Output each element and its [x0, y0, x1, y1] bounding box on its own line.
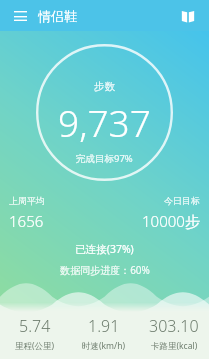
button[interactable]: Open navigation menu — [9, 5, 31, 27]
staticText: 数据同步进度：60% — [60, 263, 150, 277]
staticText: 上周平均 — [9, 195, 45, 206]
button[interactable]: Map — [176, 4, 200, 28]
staticText: 情侣鞋 — [38, 8, 77, 24]
staticText: 完成目标97% — [76, 152, 133, 165]
staticText: 9,737 — [58, 97, 151, 147]
staticText: 时速(km/h) — [82, 340, 126, 352]
staticText: 步数 — [94, 80, 115, 93]
staticText: 里程(公里) — [15, 340, 55, 352]
button[interactable]: 5.74 — [0, 312, 69, 359]
button[interactable]: 303.10 — [139, 312, 209, 359]
staticText: 已连接(37%) — [75, 242, 134, 256]
staticText: 1.91 — [88, 315, 120, 337]
staticText: 303.10 — [149, 315, 199, 337]
button[interactable]: 1.91 — [69, 312, 139, 359]
staticText: 今日目标 — [164, 195, 200, 206]
staticText: 1656 — [9, 211, 44, 231]
staticText: 卡路里(kcal) — [151, 340, 198, 352]
staticText: 10000步 — [142, 211, 200, 231]
staticText: 5.74 — [19, 315, 51, 337]
button[interactable]: 已连接(37%) — [0, 242, 209, 256]
